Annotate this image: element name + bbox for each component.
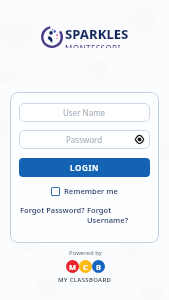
button[interactable]: Forgot Password?: [19, 204, 86, 216]
button[interactable]: Show password: [134, 134, 145, 145]
staticText: Forgot Password?: [20, 205, 85, 215]
staticText: LOGIN: [70, 162, 100, 173]
staticText: M: [69, 262, 77, 272]
staticText: MY CLASSBOARD: [58, 276, 112, 284]
staticText: Powered by: [69, 249, 102, 257]
button[interactable]: Remember me: [49, 184, 120, 198]
staticText: Password: [66, 134, 103, 145]
staticText: SPARKLES: [65, 25, 129, 43]
staticText: Remember me: [64, 186, 118, 196]
staticText: Forgot Username?: [87, 205, 149, 225]
button[interactable]: User Name: [19, 103, 150, 122]
staticText: User Name: [63, 107, 106, 118]
staticText: C: [83, 262, 88, 272]
staticText: MONTESSORI: [65, 43, 121, 48]
button[interactable]: LOGIN: [19, 158, 150, 177]
button[interactable]: Password: [19, 130, 150, 149]
button[interactable]: Forgot Username?: [86, 204, 150, 226]
staticText: B: [96, 262, 101, 272]
